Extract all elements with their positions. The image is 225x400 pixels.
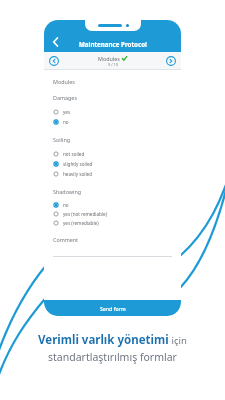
staticText: Modules [53,78,75,85]
staticText: heavily soiled [63,171,93,177]
staticText: not soiled [63,151,85,157]
staticText: 9 / 10 [108,62,118,67]
staticText: Soiling [53,136,71,143]
button[interactable]: heavily soiled [53,169,172,179]
button[interactable]: Back [48,34,64,50]
button[interactable]: not soiled [53,149,172,159]
button[interactable]: yes (not remediable) [53,209,172,218]
staticText: yes (not remediable) [63,211,108,217]
staticText: Comment [53,236,79,243]
staticText: standartlaştırılmış formlar [48,350,177,364]
staticText: no [63,202,69,208]
staticText: Verimli varlık yönetimi için [38,332,187,348]
staticText: no [63,119,69,125]
button[interactable]: no [53,117,172,127]
staticText: Damages [53,94,77,101]
button[interactable]: no [53,200,172,209]
button[interactable]: Send form [44,300,181,316]
staticText: yes (remediable) [63,220,99,226]
button[interactable]: yes (remediable) [53,218,172,227]
staticText: slightly soiled [63,161,93,167]
button[interactable]: Previous module [49,56,59,66]
staticText: yes [63,109,71,115]
staticText: Shadowing [53,188,82,195]
staticText: Modules [98,55,120,62]
button[interactable]: Next module [166,56,176,66]
staticText: Send form [100,305,126,312]
staticText: Maintenance Protocol [79,40,147,48]
button[interactable]: slightly soiled [53,159,172,169]
button[interactable]: yes [53,107,172,117]
